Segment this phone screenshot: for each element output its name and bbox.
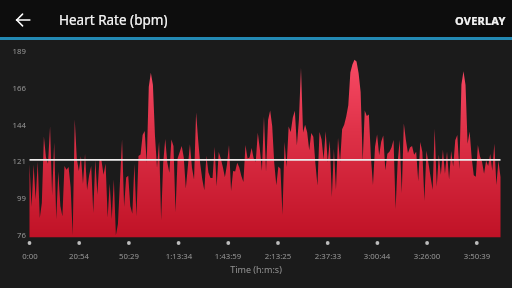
- staticText: 50:29: [105, 251, 153, 262]
- button[interactable]: OVERLAY: [449, 5, 512, 36]
- staticText: 3:00:44: [353, 251, 401, 262]
- staticText: OVERLAY: [455, 13, 506, 28]
- staticText: 99: [1, 193, 26, 204]
- staticText: 121: [1, 156, 26, 167]
- staticText: 189: [1, 46, 26, 57]
- staticText: 1:43:59: [204, 251, 252, 262]
- staticText: 1:13:34: [155, 251, 203, 262]
- staticText: 0:00: [6, 251, 54, 262]
- staticText: 3:50:39: [453, 251, 501, 262]
- staticText: 3:26:00: [403, 251, 451, 262]
- staticText: 76: [1, 230, 26, 241]
- staticText: Heart Rate (bpm): [59, 11, 168, 29]
- staticText: 166: [1, 83, 26, 94]
- staticText: 144: [1, 120, 26, 131]
- staticText: 2:13:25: [254, 251, 302, 262]
- button[interactable]: Back: [6, 3, 40, 37]
- staticText: 20:54: [55, 251, 103, 262]
- staticText: Time (h:m:s): [228, 263, 284, 275]
- staticText: 2:37:33: [304, 251, 352, 262]
